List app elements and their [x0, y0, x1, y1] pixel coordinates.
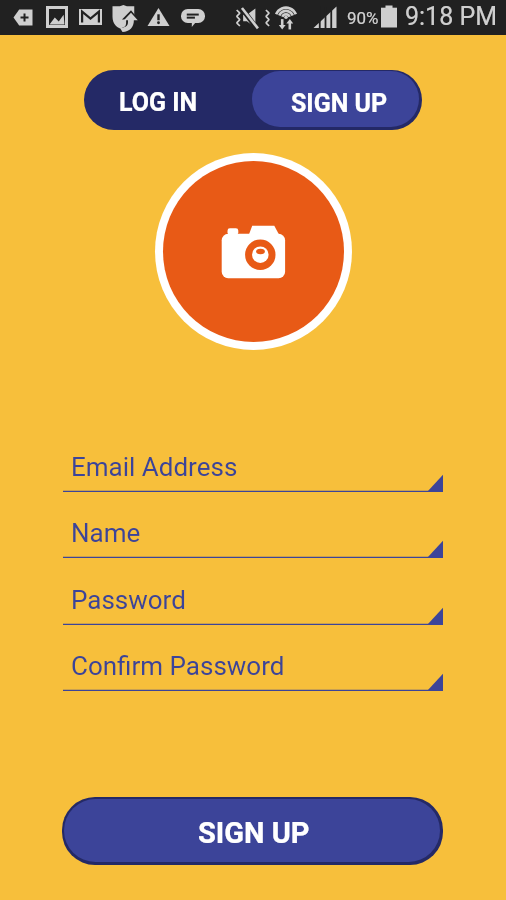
staticText: Name	[71, 518, 141, 548]
button[interactable]: Confirm Password	[63, 648, 443, 692]
staticText: Confirm Password	[71, 651, 285, 681]
button[interactable]: Password	[63, 582, 443, 626]
staticText: Email Address	[71, 452, 238, 482]
button[interactable]: LOG IN	[84, 70, 252, 130]
staticText: SIGN UP	[198, 816, 310, 850]
staticText: 90%	[347, 8, 379, 28]
button[interactable]: Email Address	[63, 449, 443, 493]
staticText: Password	[71, 585, 186, 615]
button[interactable]: SIGN UP	[252, 71, 419, 127]
button[interactable]: SIGN UP	[62, 797, 443, 865]
button[interactable]: Name	[63, 515, 443, 559]
staticText: SIGN UP	[291, 89, 388, 118]
staticText: LOG IN	[119, 88, 198, 117]
button[interactable]: Add profile photo	[155, 153, 352, 350]
staticText: 9:18 PM	[405, 2, 498, 31]
